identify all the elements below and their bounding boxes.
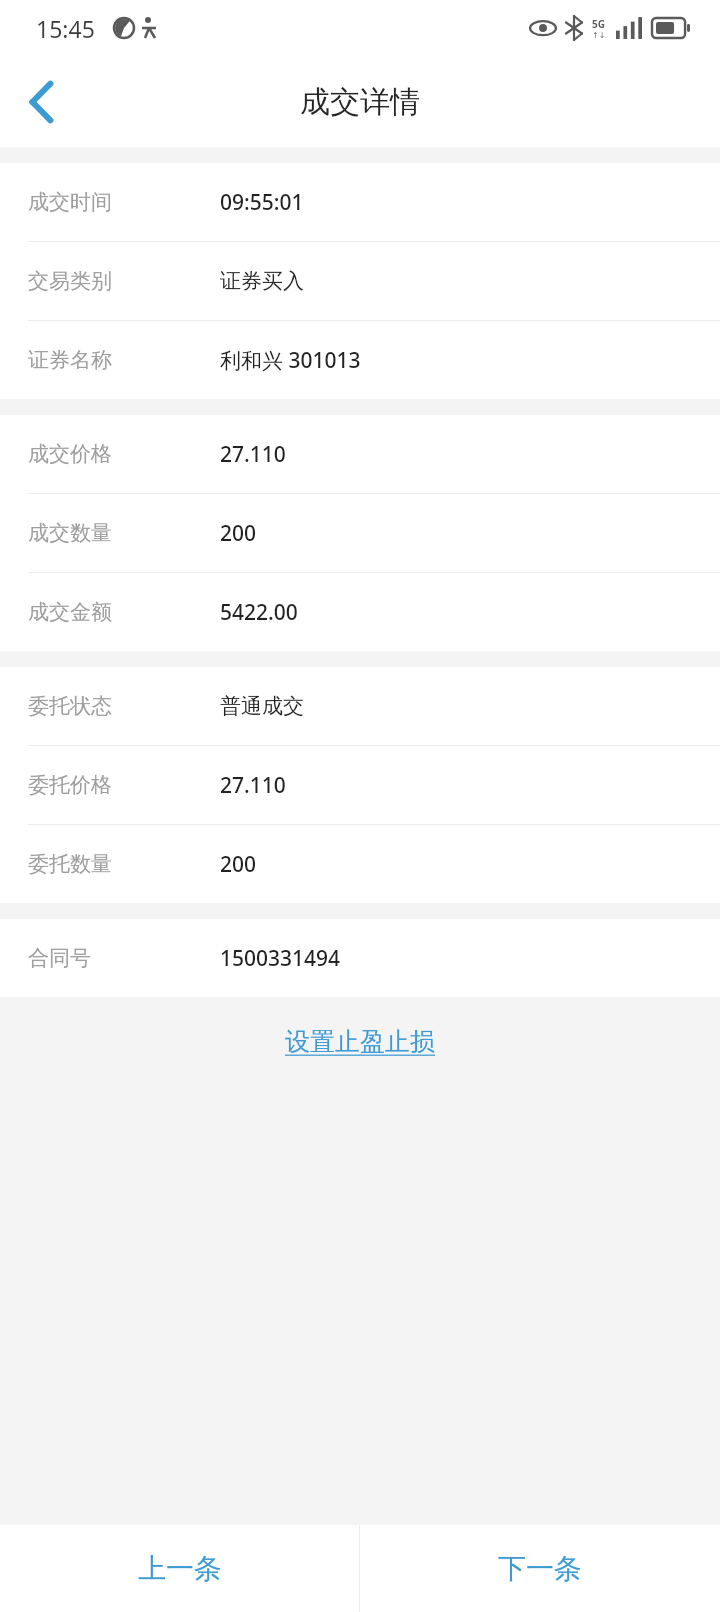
staticText: 200 <box>220 519 257 548</box>
staticText: 成交详情 <box>300 83 420 121</box>
button[interactable]: 上一条 <box>0 1525 359 1612</box>
staticText: 委托状态 <box>28 693 220 719</box>
staticText: 成交金额 <box>28 599 220 625</box>
staticText: 1500331494 <box>220 944 341 973</box>
staticText: 委托价格 <box>28 772 220 798</box>
staticText: 5G <box>592 17 605 31</box>
staticText: 委托数量 <box>28 851 220 877</box>
button[interactable]: 下一条 <box>360 1525 720 1612</box>
staticText: 成交数量 <box>28 520 220 546</box>
staticText: 普通成交 <box>220 693 304 719</box>
staticText: 上一条 <box>138 1551 222 1586</box>
staticText: 成交时间 <box>28 189 220 215</box>
staticText: 证券买入 <box>220 268 304 294</box>
button[interactable]: Back <box>0 60 84 144</box>
staticText: 5422.00 <box>220 598 298 627</box>
staticText: 证券名称 <box>28 347 220 373</box>
staticText: 交易类别 <box>28 268 220 294</box>
button[interactable]: 设置止盈止损 <box>0 997 720 1085</box>
staticText: 合同号 <box>28 945 220 971</box>
staticText: 09:55:01 <box>220 188 304 217</box>
staticText: 下一条 <box>498 1551 582 1586</box>
staticText: 27.110 <box>220 440 286 469</box>
staticText: 利和兴 301013 <box>220 346 361 375</box>
staticText: 200 <box>220 850 257 879</box>
staticText: 设置止盈止损 <box>285 1026 435 1057</box>
staticText: 15:45 <box>36 13 95 44</box>
staticText: 成交价格 <box>28 441 220 467</box>
staticText: ↑↓ <box>592 31 606 40</box>
staticText: 27.110 <box>220 771 286 800</box>
